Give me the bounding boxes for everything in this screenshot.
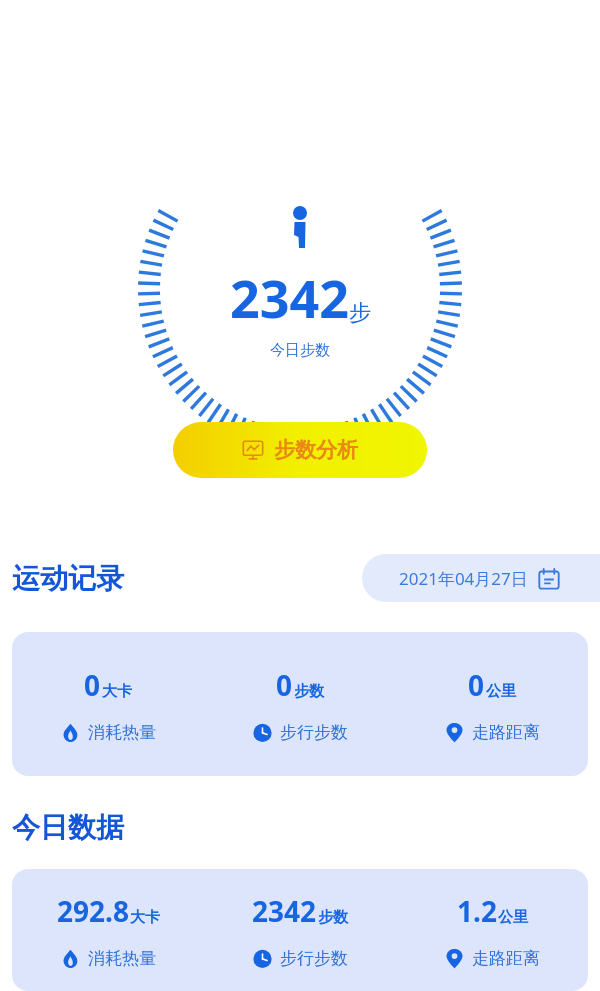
- button[interactable]: 0: [12, 632, 588, 776]
- button[interactable]: 步数分析: [173, 422, 427, 478]
- staticText: 2021年04月27日: [399, 567, 528, 590]
- staticText: 走路距离: [472, 722, 540, 743]
- staticText: 0: [468, 666, 485, 704]
- staticText: 步行步数: [280, 722, 348, 743]
- other: Pick date: [538, 568, 560, 590]
- button[interactable]: 292.8: [12, 869, 588, 991]
- staticText: 步行步数: [280, 948, 348, 969]
- staticText: 公里: [498, 908, 528, 927]
- staticText: 2342: [230, 262, 349, 333]
- staticText: 消耗热量: [88, 948, 156, 969]
- staticText: 走路距离: [472, 948, 540, 969]
- staticText: 运动记录: [12, 561, 124, 596]
- staticText: 今日数据: [12, 810, 124, 845]
- staticText: 步: [349, 299, 371, 327]
- staticText: 步数: [294, 682, 324, 701]
- staticText: 292.8: [57, 892, 129, 930]
- staticText: 消耗热量: [88, 722, 156, 743]
- staticText: 步数: [318, 908, 348, 927]
- staticText: 大卡: [102, 682, 132, 701]
- staticText: 今日步数: [270, 341, 330, 360]
- staticText: 大卡: [130, 908, 160, 927]
- staticText: 2342: [252, 892, 317, 930]
- button[interactable]: 2021年04月27日: [362, 554, 600, 602]
- staticText: 0: [84, 666, 101, 704]
- staticText: 1.2: [457, 892, 497, 930]
- staticText: 公里: [486, 682, 516, 701]
- staticText: 0: [276, 666, 293, 704]
- staticText: 步数分析: [274, 437, 358, 463]
